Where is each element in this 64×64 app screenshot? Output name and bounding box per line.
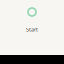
staticText: Start — [26, 26, 38, 33]
